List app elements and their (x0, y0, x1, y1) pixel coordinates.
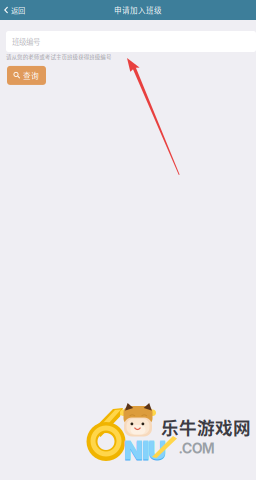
button[interactable]: 查询 (7, 66, 46, 85)
staticText: 乐牛游戏网 (161, 414, 251, 439)
button[interactable]: 返回 (0, 0, 31, 20)
staticText: 申请加入班级 (114, 4, 162, 15)
staticText: .COM (179, 440, 215, 457)
staticText: 请从您的老师或考试主页班级获得班级编号 (6, 53, 111, 61)
staticText: NIU (124, 435, 166, 466)
staticText: NIU (124, 436, 166, 467)
staticText: 返回 (11, 5, 25, 15)
staticText: 查询 (23, 70, 39, 81)
staticText: 班级编号 (12, 36, 40, 47)
